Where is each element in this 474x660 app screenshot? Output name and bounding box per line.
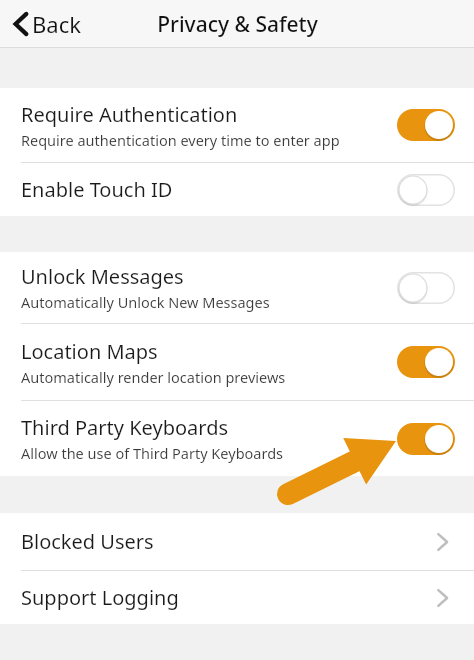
staticText: Automatically Unlock New Messages bbox=[21, 292, 270, 312]
staticText: Require authentication every time to ent… bbox=[21, 130, 340, 150]
button[interactable]: Location Maps bbox=[0, 324, 474, 400]
button[interactable] bbox=[397, 272, 455, 304]
button[interactable] bbox=[397, 174, 455, 206]
staticText: Allow the use of Third Party Keyboards bbox=[21, 443, 284, 463]
staticText: Blocked Users bbox=[21, 528, 154, 555]
staticText: Third Party Keyboards bbox=[21, 414, 229, 441]
staticText: Privacy & Safety bbox=[157, 10, 318, 39]
staticText: Support Logging bbox=[21, 584, 179, 611]
staticText: Location Maps bbox=[21, 338, 158, 365]
staticText: Unlock Messages bbox=[21, 263, 184, 290]
staticText: Enable Touch ID bbox=[21, 176, 173, 203]
button[interactable] bbox=[397, 109, 455, 141]
button[interactable] bbox=[397, 346, 455, 378]
button[interactable]: Enable Touch ID bbox=[0, 163, 474, 216]
button[interactable]: Back bbox=[0, 0, 91, 48]
button[interactable]: Support Logging bbox=[0, 571, 474, 624]
staticText: Automatically render location previews bbox=[21, 367, 286, 387]
staticText: Require Authentication bbox=[21, 101, 238, 128]
button[interactable]: Require Authentication bbox=[0, 88, 474, 162]
button[interactable]: Unlock Messages bbox=[0, 252, 474, 323]
button[interactable]: Third Party Keyboards bbox=[0, 401, 474, 476]
staticText: Back bbox=[32, 9, 81, 39]
button[interactable] bbox=[397, 423, 455, 455]
button[interactable]: Blocked Users bbox=[0, 513, 474, 570]
